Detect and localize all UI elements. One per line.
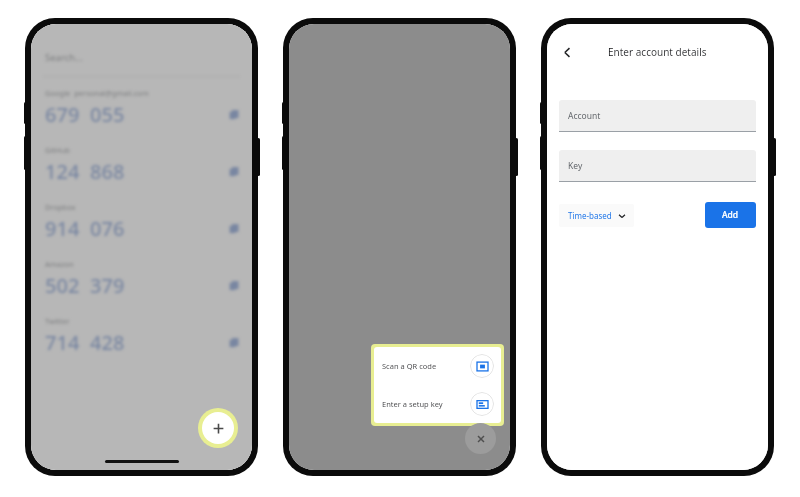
- staticText: Twitter: [45, 316, 70, 326]
- button[interactable]: Twitter: [31, 305, 252, 362]
- button[interactable]: Time-based: [559, 204, 634, 227]
- staticText: Enter account details: [608, 45, 707, 59]
- button[interactable]: Back: [555, 40, 579, 64]
- button[interactable]: Account: [559, 100, 756, 132]
- staticText: Google personal@gmail.com: [45, 88, 149, 98]
- staticText: 502: [45, 272, 80, 299]
- staticText: GitHub: [45, 145, 70, 155]
- staticText: 714: [45, 329, 80, 356]
- staticText: Amazon: [45, 259, 74, 269]
- staticText: 379: [90, 272, 125, 299]
- button[interactable]: Key: [559, 150, 756, 182]
- button[interactable]: Add: [705, 202, 756, 228]
- staticText: Time-based: [568, 210, 612, 221]
- staticText: Add: [722, 209, 739, 221]
- button[interactable]: Add account: [202, 412, 234, 444]
- staticText: Enter a setup key: [382, 399, 443, 409]
- staticText: Search...: [45, 51, 83, 64]
- button[interactable]: GitHub: [31, 134, 252, 191]
- staticText: 914: [45, 215, 80, 242]
- button[interactable]: Scan a QR code: [374, 347, 501, 385]
- button[interactable]: Google personal@gmail.com: [31, 77, 252, 134]
- button[interactable]: Amazon: [31, 248, 252, 305]
- button[interactable]: Search...: [45, 44, 238, 70]
- staticText: 679: [45, 101, 80, 128]
- staticText: 868: [90, 158, 125, 185]
- staticText: Key: [568, 160, 583, 172]
- staticText: Account: [568, 110, 601, 122]
- button[interactable]: Enter a setup key: [374, 385, 501, 423]
- staticText: Dropbox: [45, 202, 76, 212]
- staticText: 076: [90, 215, 125, 242]
- staticText: 055: [90, 101, 125, 128]
- staticText: 124: [45, 158, 80, 185]
- staticText: 428: [90, 329, 125, 356]
- button[interactable]: Close: [465, 423, 496, 454]
- staticText: Scan a QR code: [382, 361, 437, 371]
- button[interactable]: Dropbox: [31, 191, 252, 248]
